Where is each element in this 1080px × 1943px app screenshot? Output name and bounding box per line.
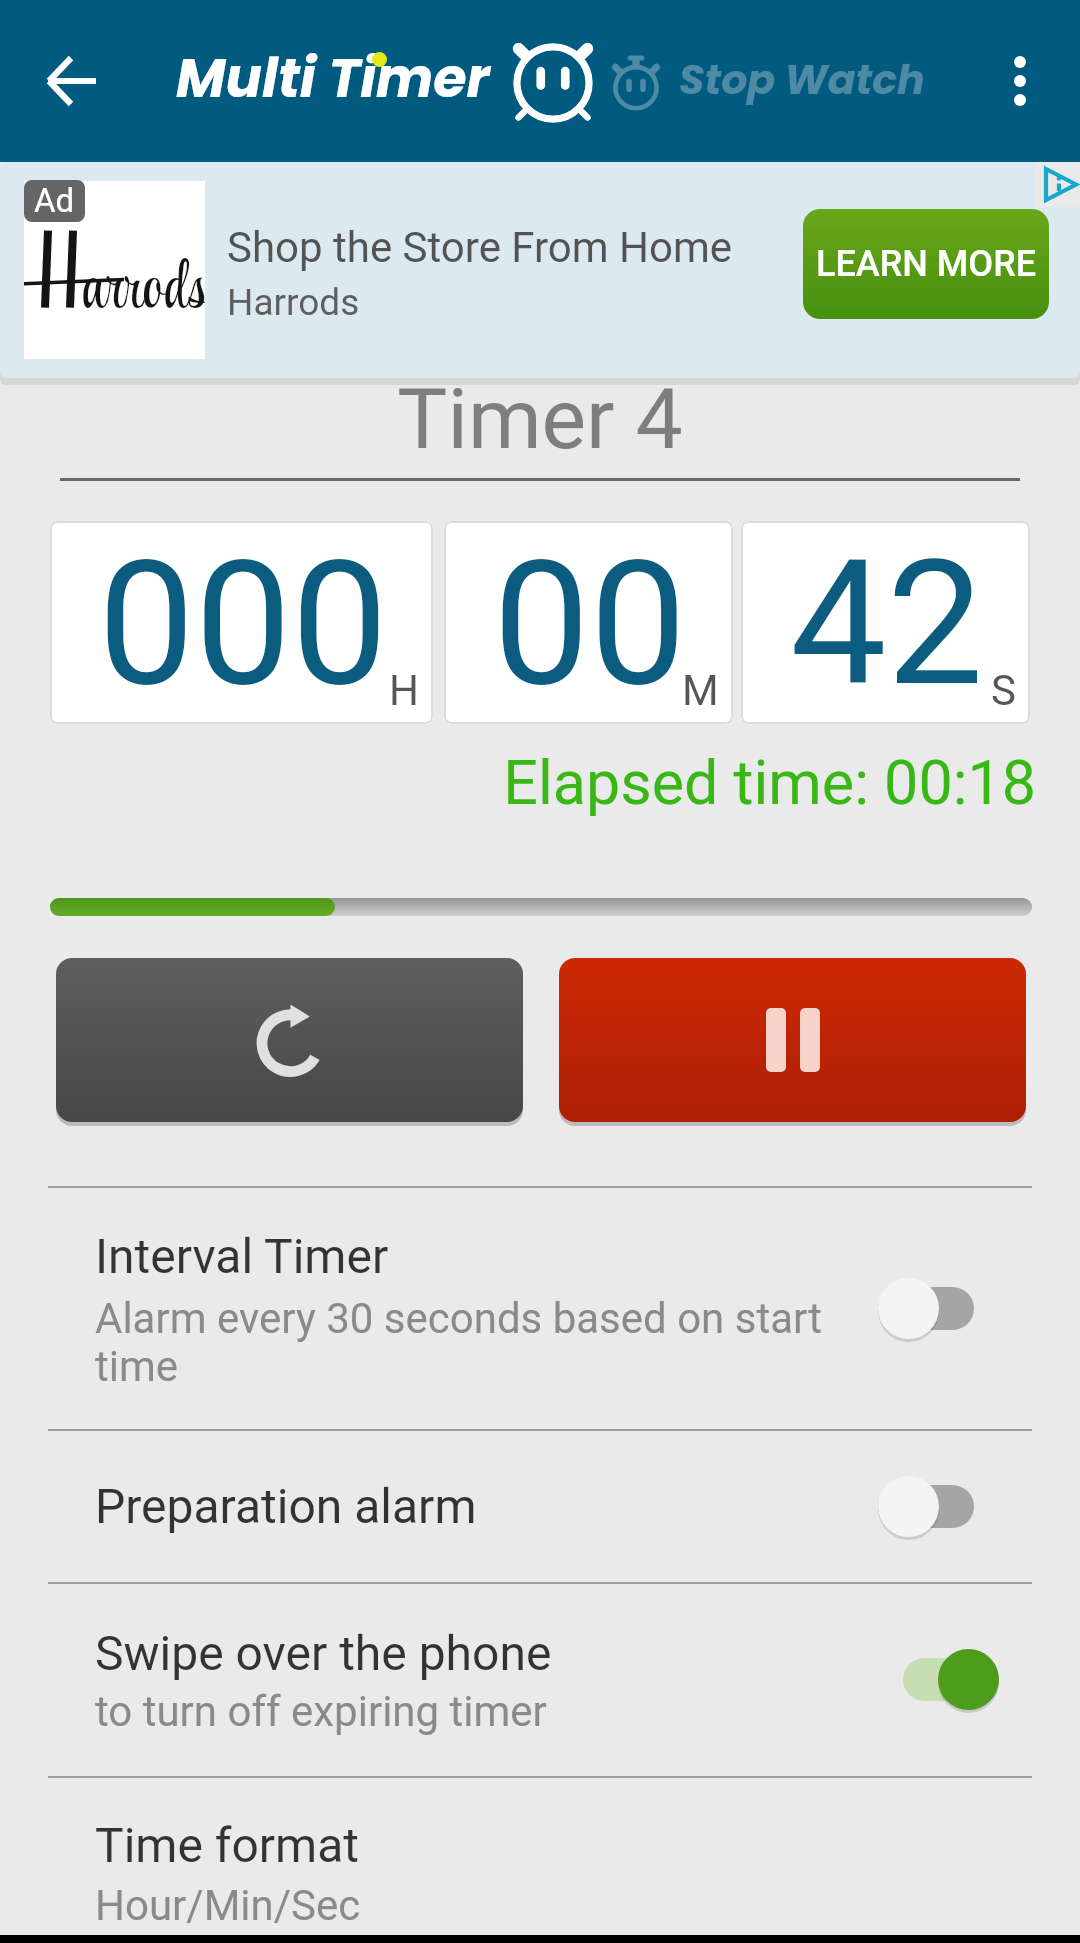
staticText: time (95, 1342, 179, 1391)
button[interactable]: Interval Timer (0, 1186, 1080, 1429)
staticText: Swipe over the phone (95, 1625, 552, 1681)
button[interactable]: Stop Watch (607, 0, 925, 162)
staticText: Preparation alarm (95, 1478, 477, 1534)
staticText: arrods (82, 243, 205, 340)
staticText: Alarm every 30 seconds based on start (95, 1294, 822, 1343)
staticText: Multi Timer (176, 40, 490, 116)
button[interactable]: More options (960, 0, 1080, 162)
staticText: H (389, 666, 419, 715)
staticText: Hour/Min/Sec (95, 1881, 361, 1930)
staticText: Shop the Store From Home (227, 223, 733, 272)
staticText: 000 (98, 523, 388, 724)
button[interactable]: Swipe over the phone (0, 1582, 1080, 1776)
button[interactable]: Restart timer (56, 958, 523, 1122)
staticText: Elapsed time: 00:18 (0, 747, 1036, 818)
staticText: Stop Watch (679, 51, 925, 108)
staticText: Harrods (227, 281, 360, 324)
button[interactable]: Pause timer (559, 958, 1026, 1122)
button[interactable]: 000 (50, 521, 433, 724)
staticText: Timer 4 (0, 370, 1080, 468)
button[interactable]: 00 (444, 521, 733, 724)
staticText: LEARN MORE (816, 243, 1037, 285)
staticText: S (991, 666, 1016, 715)
button[interactable]: Back (0, 0, 144, 162)
button[interactable]: LEARN MORE (803, 209, 1049, 319)
button[interactable]: Time format (0, 1776, 1080, 1943)
staticText: 00 (493, 523, 687, 724)
staticText: Time format (95, 1817, 359, 1873)
staticText: M (682, 666, 719, 715)
button[interactable]: Multi Timer (176, 0, 594, 162)
button[interactable]: Preparation alarm (0, 1429, 1080, 1582)
staticText: Ad (34, 181, 75, 220)
staticText: to turn off expiring timer (95, 1687, 547, 1736)
staticText: Interval Timer (95, 1228, 389, 1284)
staticText: 42 (790, 523, 984, 724)
button[interactable]: 42 (741, 521, 1030, 724)
